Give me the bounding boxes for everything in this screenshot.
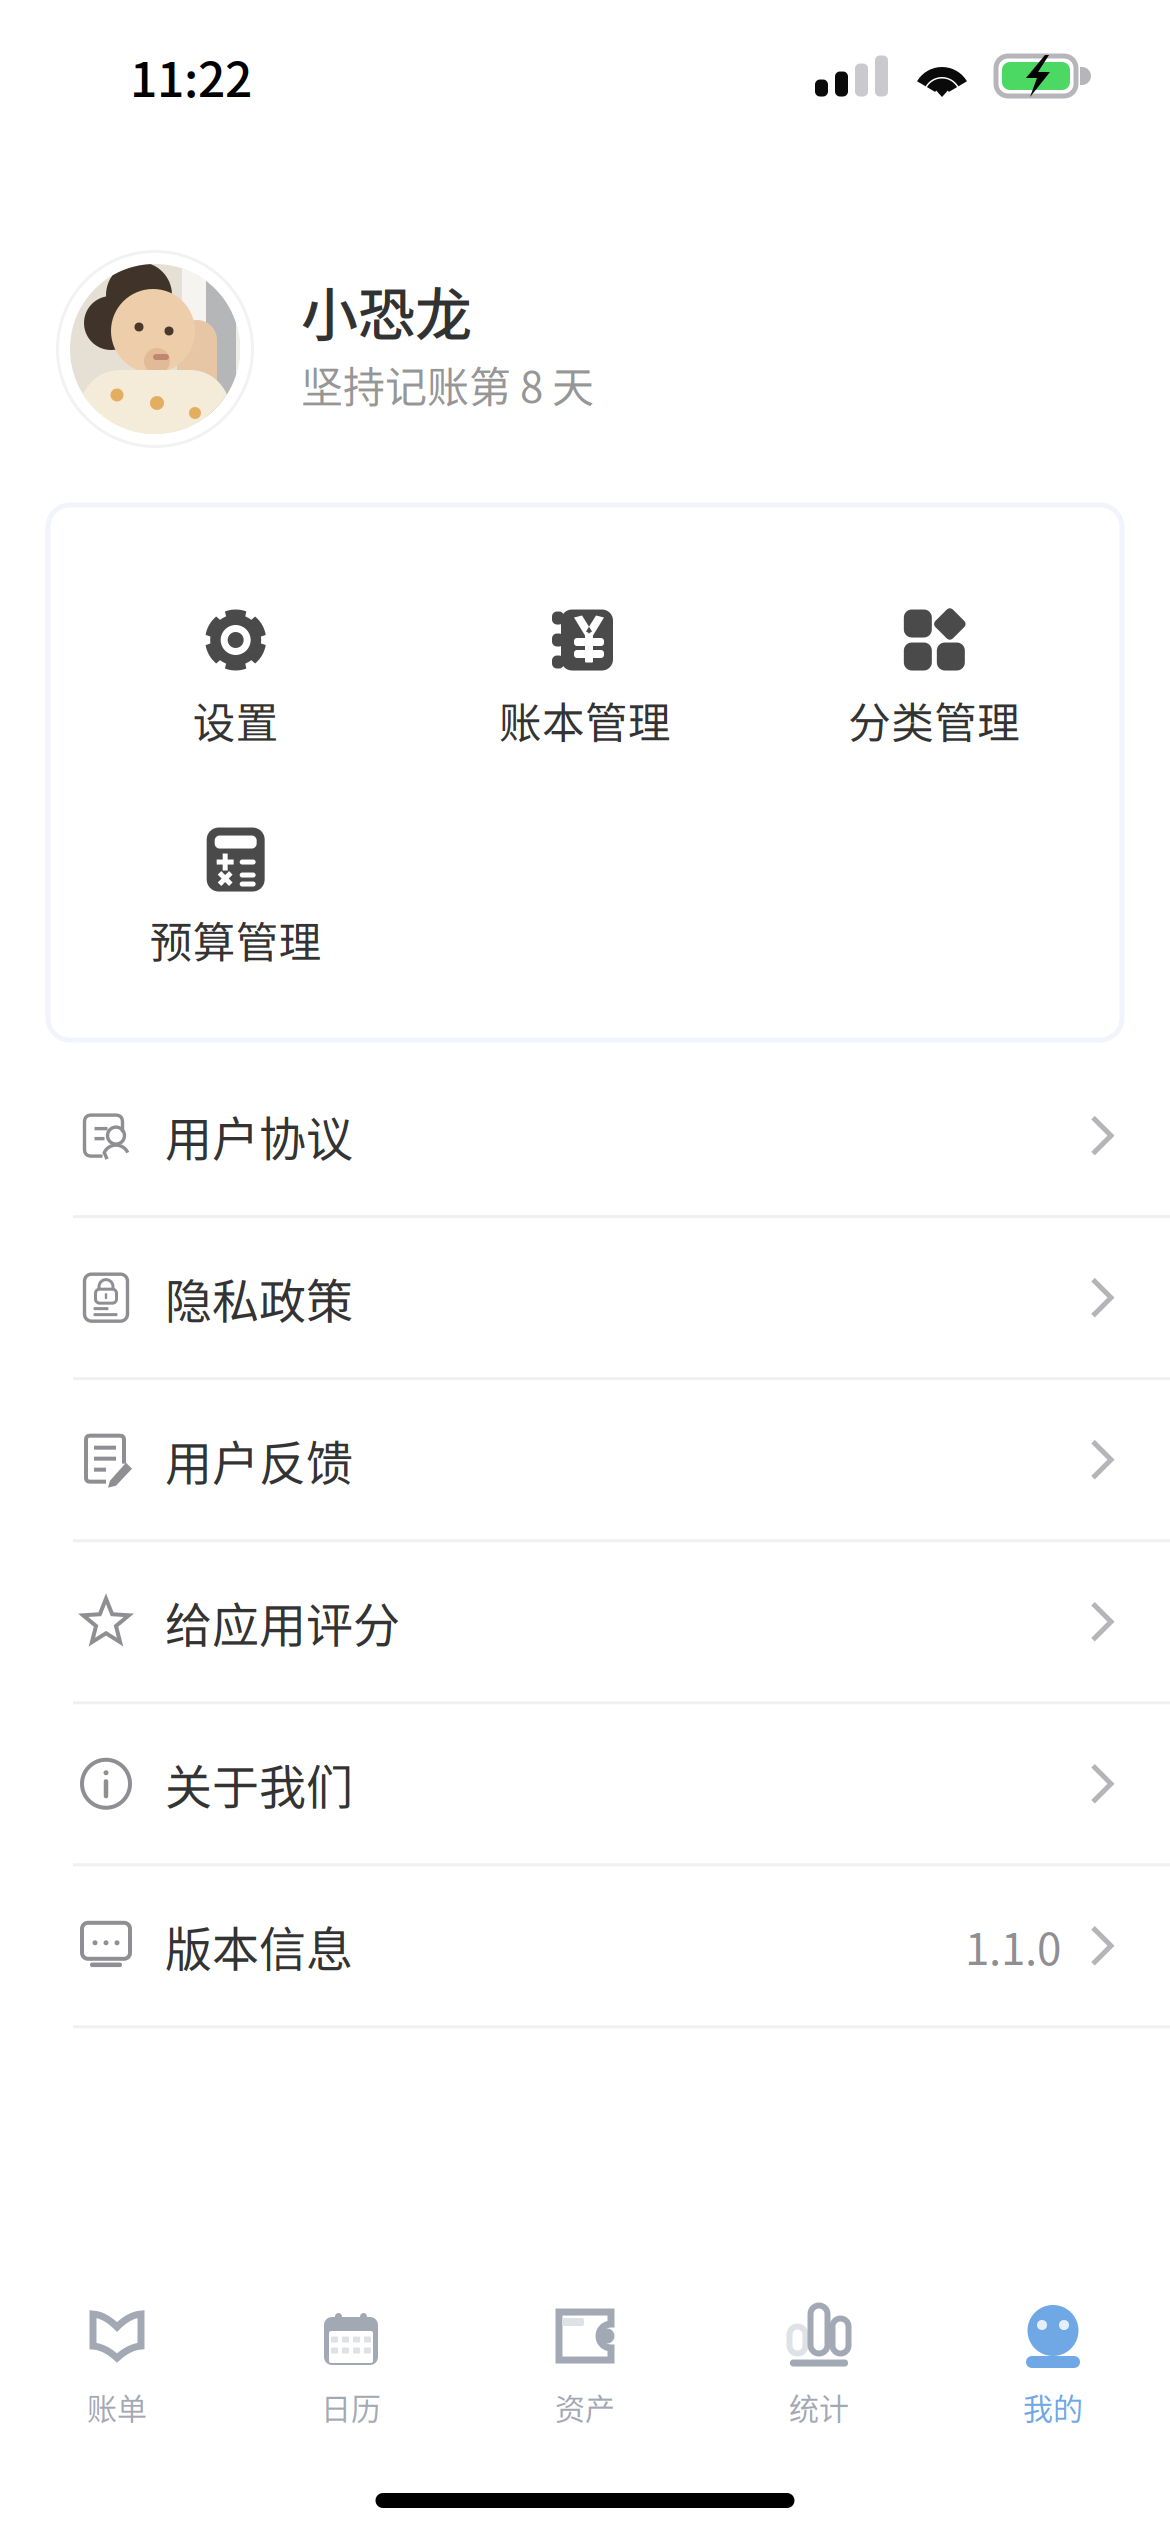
button[interactable]: 资产 [468,2305,702,2428]
button[interactable]: 统计 [702,2305,936,2428]
button[interactable]: 隐私政策 [0,1218,1170,1380]
staticText: 日历 [321,2385,381,2428]
staticText: 分类管理 [848,689,1020,750]
staticText: 关于我们 [165,1750,353,1818]
staticText: 统计 [789,2385,849,2428]
staticText: 账单 [87,2385,147,2428]
staticText: 我的 [1023,2385,1083,2428]
staticText: 小恐龙 [301,269,472,352]
button[interactable]: 用户反馈 [0,1380,1170,1542]
button[interactable]: 小恐龙 [0,243,1170,441]
button[interactable]: 我的 [936,2305,1170,2428]
button[interactable]: 账本管理 [410,608,760,750]
button[interactable]: 账单 [0,2305,234,2428]
staticText: 版本信息 [165,1912,353,1980]
button[interactable]: 版本信息 [0,1866,1170,2028]
button[interactable]: 用户协议 [0,1056,1170,1218]
staticText: 坚持记账第 8 天 [301,354,594,415]
staticText: 预算管理 [150,908,322,970]
button[interactable]: 日历 [234,2305,468,2428]
button[interactable]: 预算管理 [61,827,410,970]
staticText: 隐私政策 [165,1264,353,1332]
staticText: 设置 [193,689,279,750]
staticText: 账本管理 [499,689,671,750]
staticText: 1.1.0 [965,1914,1061,1978]
button[interactable]: 分类管理 [760,608,1109,750]
staticText: 给应用评分 [165,1588,400,1656]
staticText: 资产 [555,2385,615,2428]
button[interactable]: 设置 [61,608,410,750]
staticText: 用户反馈 [165,1426,353,1494]
button[interactable]: 关于我们 [0,1704,1170,1866]
staticText: 11:22 [130,41,252,111]
staticText: 用户协议 [165,1102,353,1170]
button[interactable]: 给应用评分 [0,1542,1170,1704]
